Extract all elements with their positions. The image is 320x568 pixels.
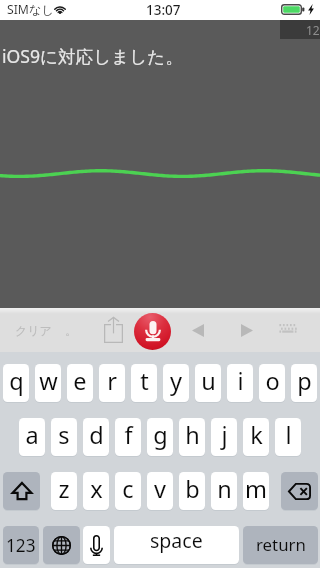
button[interactable]: h [179, 418, 205, 456]
button[interactable]: Next [235, 322, 259, 338]
button[interactable]: t [131, 364, 157, 402]
button[interactable]: a [19, 418, 45, 456]
staticText: 123 [6, 534, 36, 557]
staticText: 13:07 [146, 1, 181, 19]
button[interactable]: Shift [3, 472, 40, 510]
staticText: w [39, 365, 58, 397]
button[interactable]: v [147, 472, 173, 510]
staticText: y [170, 365, 182, 397]
staticText: z [58, 473, 70, 505]
staticText: space [150, 527, 203, 554]
staticText: f [124, 419, 133, 451]
staticText: r [107, 365, 117, 397]
button[interactable]: u [195, 364, 221, 402]
button[interactable]: Delete [281, 472, 318, 510]
button[interactable]: m [243, 472, 269, 510]
button[interactable]: n [211, 472, 237, 510]
staticText: b [185, 473, 200, 505]
button[interactable]: クリア [12, 318, 55, 342]
button[interactable]: Previous [186, 322, 210, 338]
staticText: 12 [306, 22, 320, 38]
button[interactable]: p [291, 364, 317, 402]
button[interactable]: r [99, 364, 125, 402]
staticText: i [237, 365, 244, 397]
button[interactable]: g [147, 418, 173, 456]
staticText: j [221, 419, 228, 451]
staticText: u [201, 365, 216, 397]
button[interactable]: j [211, 418, 237, 456]
button[interactable]: Hide keyboard [276, 320, 300, 336]
staticText: g [153, 419, 168, 451]
button[interactable]: Record [134, 313, 171, 350]
button[interactable]: x [83, 472, 109, 510]
button[interactable]: q [3, 364, 29, 402]
button[interactable]: space [114, 526, 239, 564]
staticText: o [265, 365, 280, 397]
button[interactable]: Numbers [3, 526, 39, 564]
staticText: e [73, 365, 87, 397]
staticText: c [122, 473, 134, 505]
staticText: s [58, 419, 70, 451]
button[interactable]: f [115, 418, 141, 456]
button[interactable]: w [35, 364, 61, 402]
button[interactable]: d [83, 418, 109, 456]
staticText: x [90, 473, 103, 505]
staticText: l [285, 419, 292, 451]
staticText: p [297, 365, 312, 397]
staticText: SIMなし [7, 1, 54, 18]
button[interactable]: l [275, 418, 301, 456]
button[interactable]: s [51, 418, 77, 456]
staticText: d [89, 419, 104, 451]
button[interactable]: Next keyboard [43, 526, 80, 564]
staticText: iOS9に対応しました。 [2, 44, 183, 68]
staticText: 。 [65, 323, 77, 338]
staticText: m [245, 473, 267, 505]
button[interactable]: y [163, 364, 189, 402]
button[interactable]: i [227, 364, 253, 402]
button[interactable]: k [243, 418, 269, 456]
button[interactable]: b [179, 472, 205, 510]
button[interactable]: e [67, 364, 93, 402]
staticText: n [217, 473, 232, 505]
staticText: h [185, 419, 200, 451]
staticText: a [25, 419, 39, 451]
staticText: q [9, 365, 24, 397]
button[interactable]: Share [98, 314, 129, 346]
staticText: k [250, 419, 263, 451]
button[interactable]: Dictation [83, 526, 110, 564]
button[interactable]: c [115, 472, 141, 510]
staticText: t [140, 365, 149, 397]
staticText: v [154, 473, 166, 505]
button[interactable]: z [51, 472, 77, 510]
button[interactable]: o [259, 364, 285, 402]
staticText: クリア [15, 323, 52, 338]
button[interactable]: Return [243, 526, 318, 564]
staticText: return [256, 533, 306, 556]
